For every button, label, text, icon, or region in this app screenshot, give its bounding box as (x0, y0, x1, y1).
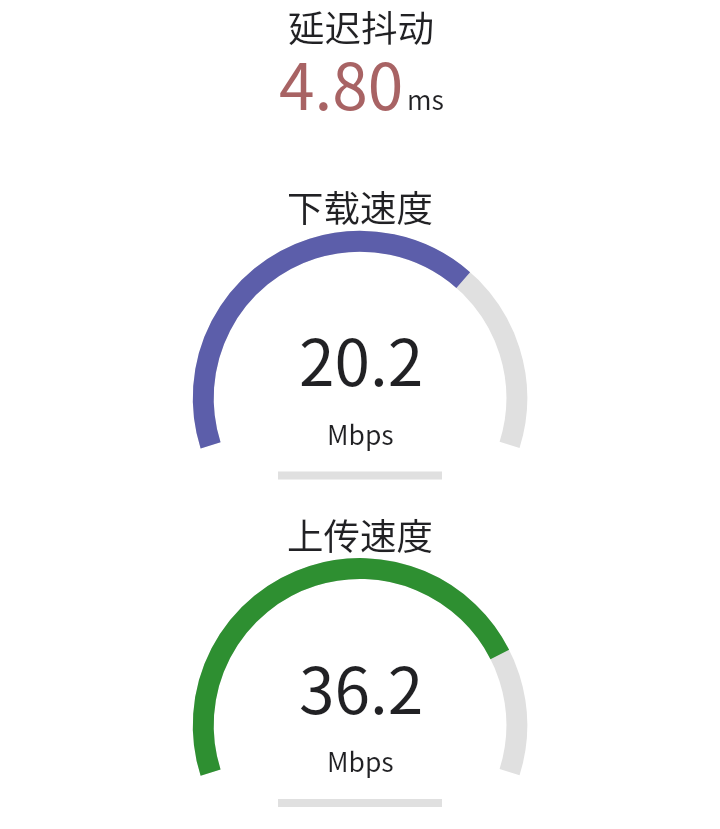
staticText: 上传速度 (287, 508, 433, 561)
button[interactable]: 上传速度 36.2 Mbps (180, 508, 540, 798)
staticText: 下载速度 (287, 180, 433, 233)
staticText: Mbps (327, 741, 394, 779)
button[interactable]: 延迟抖动 4.80 ms (250, 0, 470, 125)
button[interactable]: 下载速度 20.2 Mbps (180, 180, 540, 470)
staticText: 36.2 (299, 640, 424, 733)
staticText: 4.80 (279, 36, 404, 129)
staticText: ms (407, 79, 444, 117)
staticText: 20.2 (299, 312, 424, 405)
staticText: Mbps (327, 414, 394, 452)
staticText: 延迟抖动 (288, 0, 434, 53)
